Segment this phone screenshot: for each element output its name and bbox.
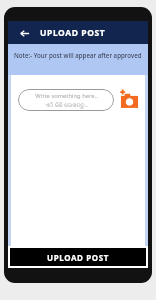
button[interactable]: UPLOAD POST (10, 248, 146, 266)
staticText: UPLOAD POST (40, 27, 106, 39)
staticText: ଏଠି କିଛି ଲେଖନ୍ତୁ.. (45, 101, 88, 109)
button[interactable]: Add photo (120, 88, 139, 112)
staticText: Write something here.. (35, 92, 98, 100)
button[interactable]: Write something here.. (18, 89, 114, 111)
staticText: UPLOAD POST (47, 252, 109, 263)
staticText: Note:- Your post will appear after appro… (14, 51, 142, 59)
button[interactable]: Back (16, 25, 32, 41)
